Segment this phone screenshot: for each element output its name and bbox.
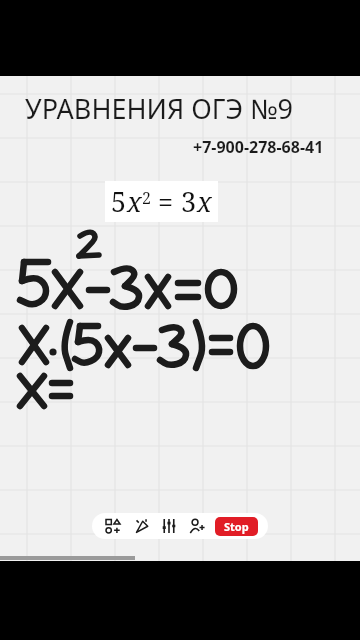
staticText: = (151, 183, 181, 220)
staticText: 2 (142, 187, 151, 209)
staticText: 3 (181, 183, 197, 220)
staticText: УРАВНЕНИЯ ОГЭ №9 (25, 90, 293, 127)
staticText: x (127, 183, 142, 220)
staticText: x (197, 183, 212, 220)
staticText: 5 (111, 183, 127, 220)
staticText: Stop (224, 519, 249, 534)
button[interactable]: Stickers (102, 515, 124, 537)
button[interactable]: Adjust (158, 515, 180, 537)
button[interactable]: Add person (186, 515, 208, 537)
staticText: +7-900-278-68-41 (193, 136, 324, 158)
button[interactable]: Effects (130, 515, 152, 537)
button[interactable]: Stop (215, 517, 258, 536)
